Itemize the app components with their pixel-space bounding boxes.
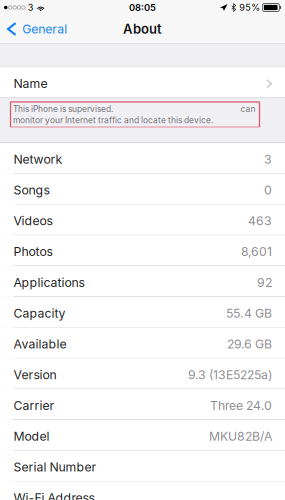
- staticText: 55.4 GB: [226, 306, 272, 321]
- button[interactable]: Model: [0, 420, 285, 450]
- staticText: 29.6 GB: [227, 337, 272, 351]
- staticText: 0: [264, 183, 272, 197]
- button[interactable]: Network: [0, 143, 285, 173]
- button[interactable]: Available: [0, 328, 285, 358]
- staticText: 3: [264, 152, 272, 167]
- staticText: can: [240, 104, 255, 114]
- staticText: 9.3 (13E5225a): [188, 367, 272, 382]
- button[interactable]: Photos: [0, 235, 285, 266]
- staticText: Available: [13, 337, 66, 351]
- staticText: General: [22, 22, 67, 36]
- staticText: 92: [257, 275, 272, 290]
- button[interactable]: Version: [0, 358, 285, 389]
- staticText: 463: [248, 213, 272, 228]
- staticText: 3: [28, 2, 34, 13]
- button[interactable]: Carrier: [0, 389, 285, 419]
- staticText: MKU82B/A: [209, 429, 272, 444]
- staticText: Capacity: [13, 306, 65, 321]
- button[interactable]: Songs: [0, 174, 285, 204]
- staticText: Three 24.0: [210, 398, 272, 413]
- staticText: Videos: [13, 213, 52, 228]
- staticText: monitor your Internet traffic and locate…: [13, 115, 213, 125]
- button[interactable]: Videos: [0, 205, 285, 235]
- button[interactable]: Name: [0, 67, 285, 98]
- staticText: Wi-Fi Address: [13, 490, 94, 500]
- staticText: 95%: [239, 2, 260, 13]
- button[interactable]: Serial Number: [0, 451, 285, 481]
- button[interactable]: Wi-Fi Address: [0, 482, 285, 500]
- staticText: Songs: [13, 183, 49, 197]
- button[interactable]: Capacity: [0, 297, 285, 327]
- staticText: 8,601: [241, 244, 272, 259]
- staticText: Serial Number: [13, 460, 96, 474]
- staticText: Photos: [13, 244, 52, 259]
- staticText: This iPhone is supervised.: [13, 104, 113, 114]
- staticText: Applications: [13, 275, 84, 290]
- button[interactable]: General: [0, 15, 75, 43]
- staticText: Network: [13, 152, 62, 167]
- button[interactable]: Applications: [0, 266, 285, 296]
- staticText: Version: [13, 367, 56, 382]
- staticText: Name: [13, 76, 47, 91]
- staticText: 08:05: [129, 2, 156, 13]
- staticText: Model: [13, 429, 49, 444]
- staticText: About: [123, 21, 162, 37]
- staticText: Carrier: [13, 398, 54, 413]
